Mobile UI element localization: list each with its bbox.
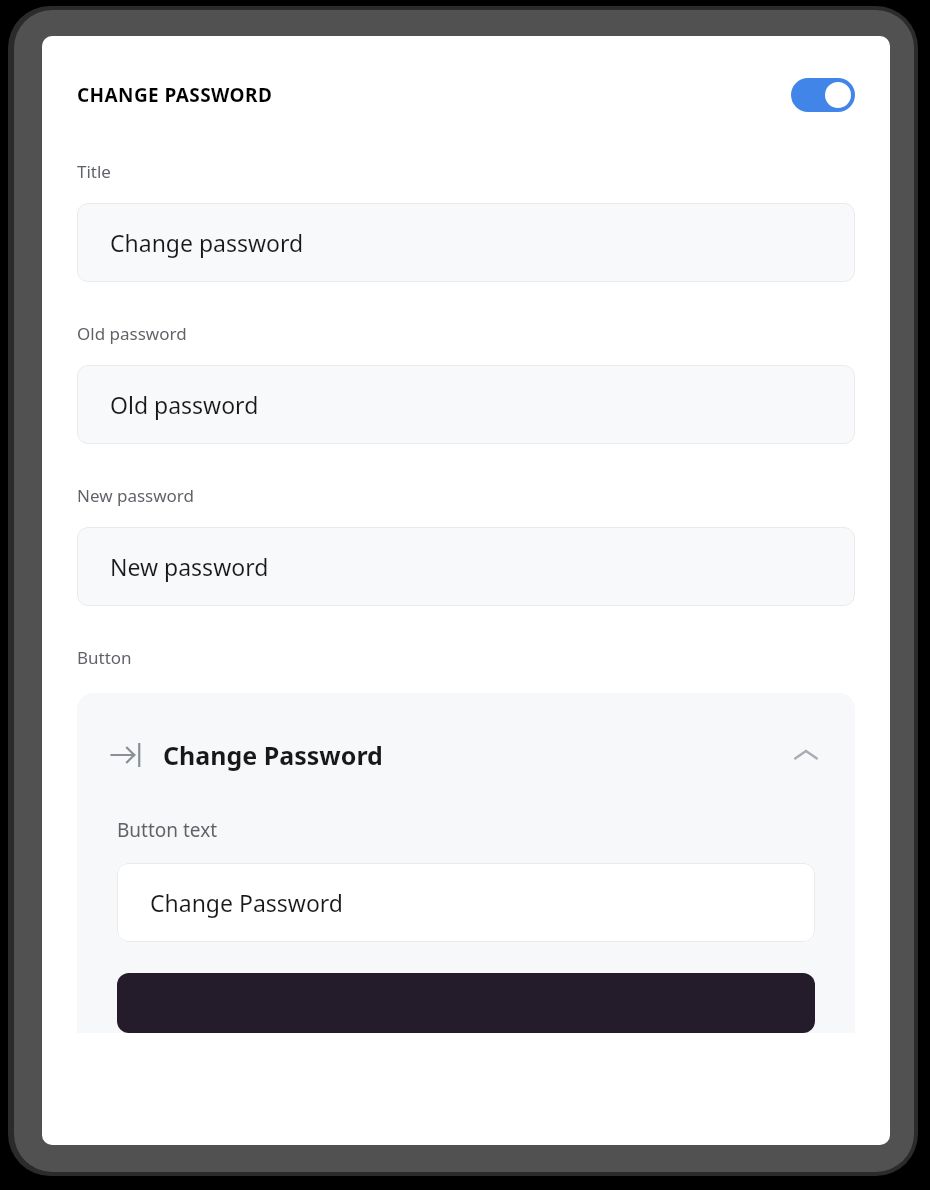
staticText: New password [110,551,269,582]
staticText: Change Password [163,738,383,772]
staticText: CHANGE PASSWORD [77,82,273,108]
other: Collapse section [789,738,823,772]
staticText: New password [77,484,195,507]
other: Login action [109,737,145,773]
button[interactable]: Change password [77,203,855,282]
staticText: Change Password [150,887,343,918]
staticText: Title [77,160,111,183]
button[interactable] [117,973,815,1033]
button[interactable]: Login action [77,693,855,817]
button[interactable]: Toggle section enabled [791,78,855,112]
staticText: Change password [110,227,304,258]
button[interactable]: Old password [77,365,855,444]
staticText: Old password [110,389,259,420]
button[interactable]: Change Password [117,863,815,942]
staticText: Button text [117,817,218,843]
staticText: Button [77,646,132,669]
staticText: Old password [77,322,187,345]
button[interactable]: New password [77,527,855,606]
